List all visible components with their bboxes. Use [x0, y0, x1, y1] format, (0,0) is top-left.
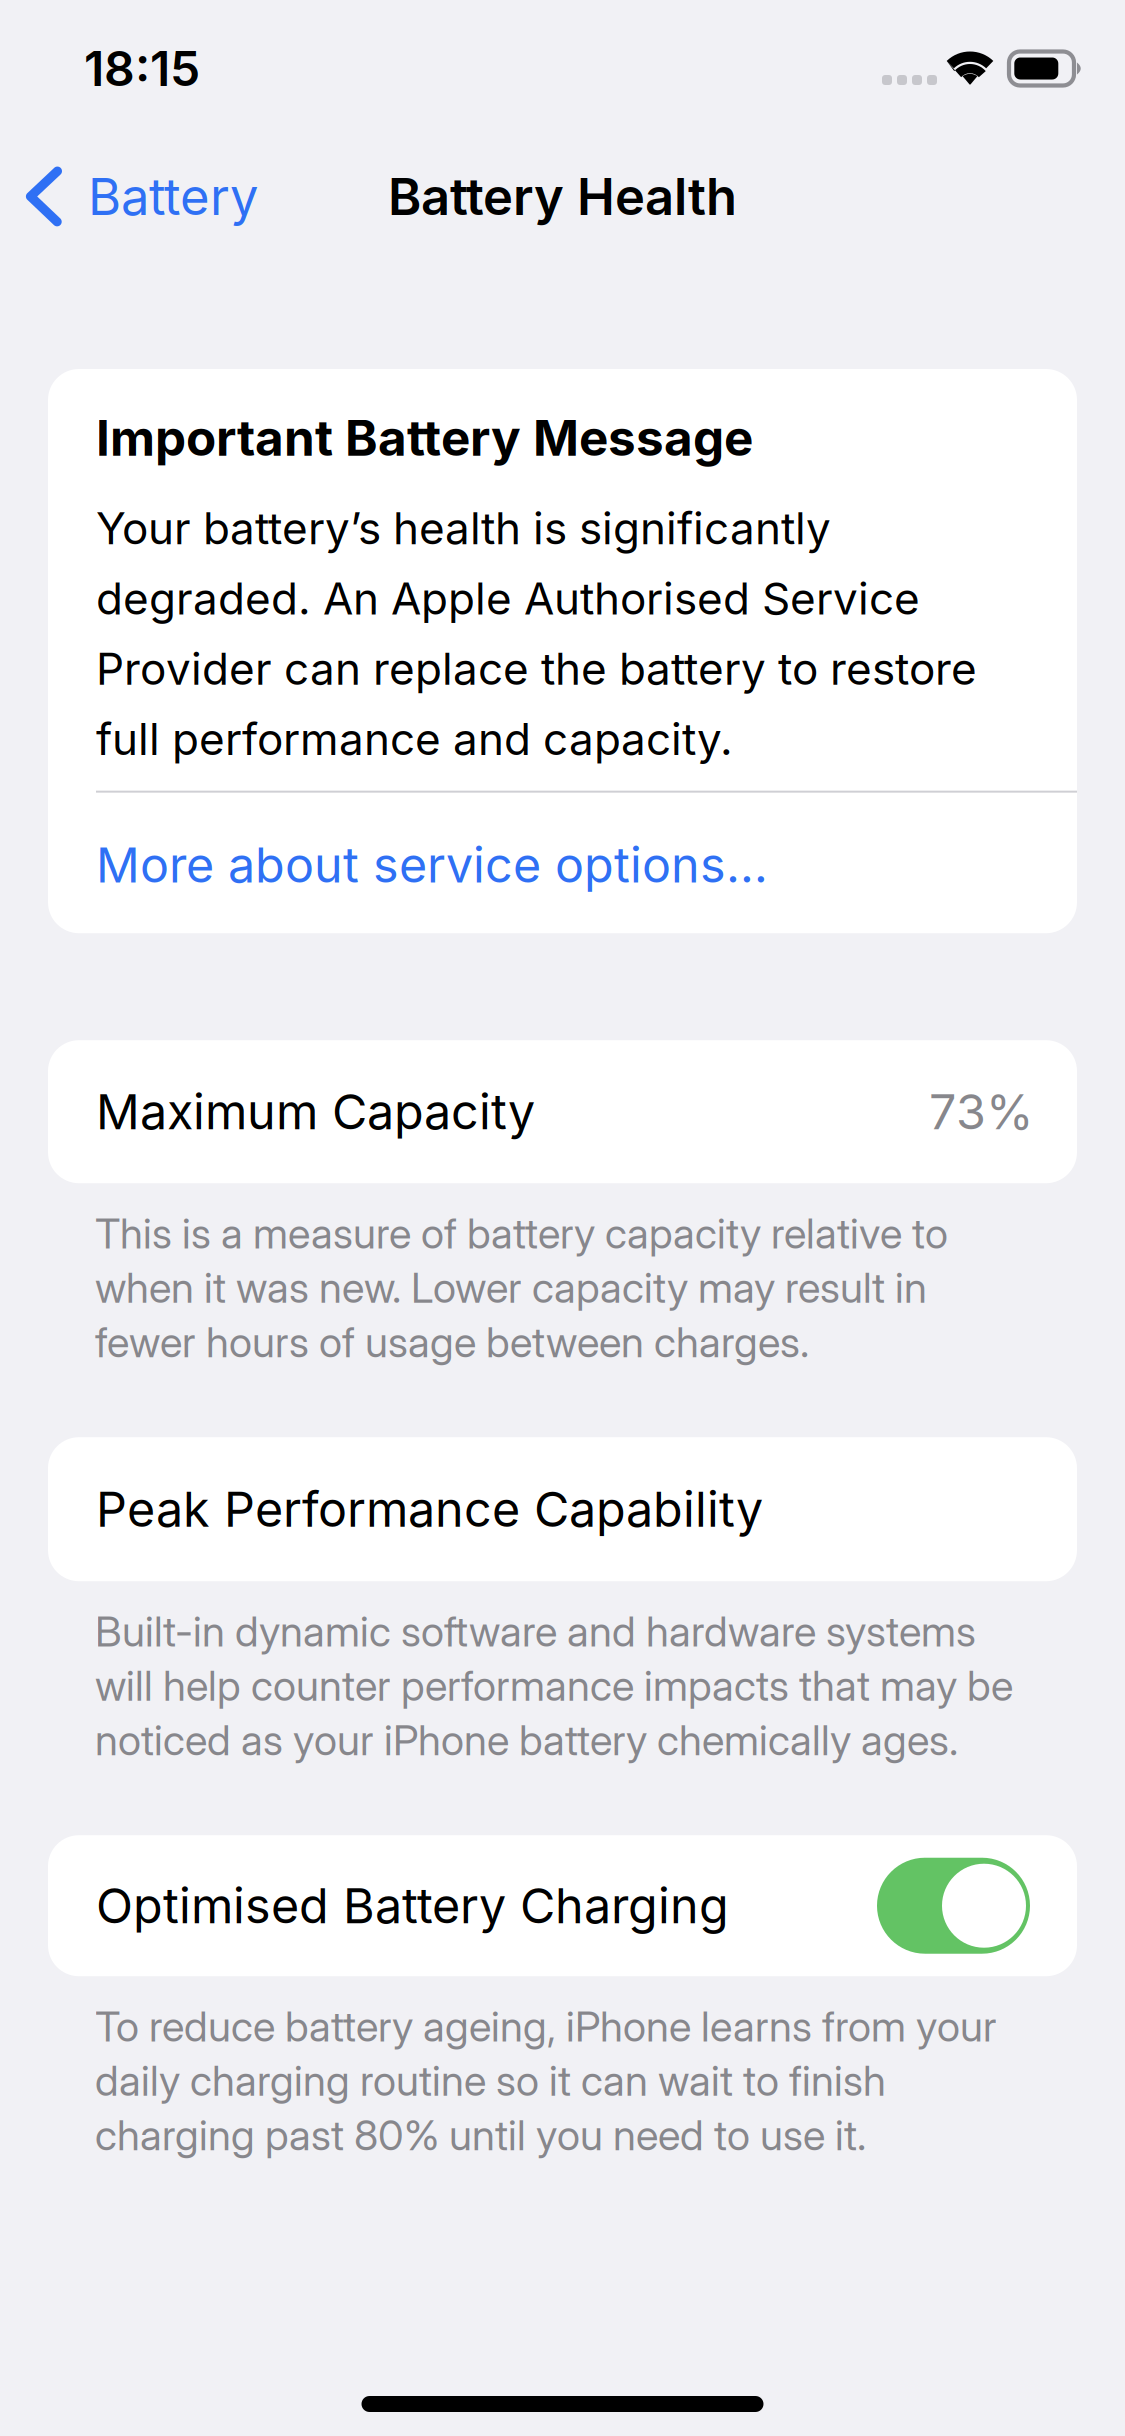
- staticText: More about service options…: [96, 836, 768, 894]
- staticText: 73%: [929, 1082, 1034, 1141]
- staticText: Maximum Capacity: [96, 1082, 535, 1141]
- button[interactable]: [877, 1858, 1030, 1954]
- staticText: Battery: [88, 166, 258, 227]
- staticText: Peak Performance Capability: [96, 1480, 763, 1538]
- staticText: 18:15: [84, 39, 200, 98]
- staticText: Your battery’s health is significantly d…: [96, 502, 977, 766]
- staticText: This is a measure of battery capacity re…: [95, 1208, 948, 1367]
- staticText: To reduce battery ageing, iPhone learns …: [95, 2001, 997, 2160]
- staticText: Built-in dynamic software and hardware s…: [95, 1606, 1013, 1765]
- staticText: Important Battery Message: [96, 408, 753, 468]
- button[interactable]: More about service options…: [96, 793, 1077, 933]
- staticText: Battery Health: [388, 166, 737, 227]
- button[interactable]: Battery: [0, 140, 282, 262]
- staticText: Optimised Battery Charging: [96, 1876, 729, 1935]
